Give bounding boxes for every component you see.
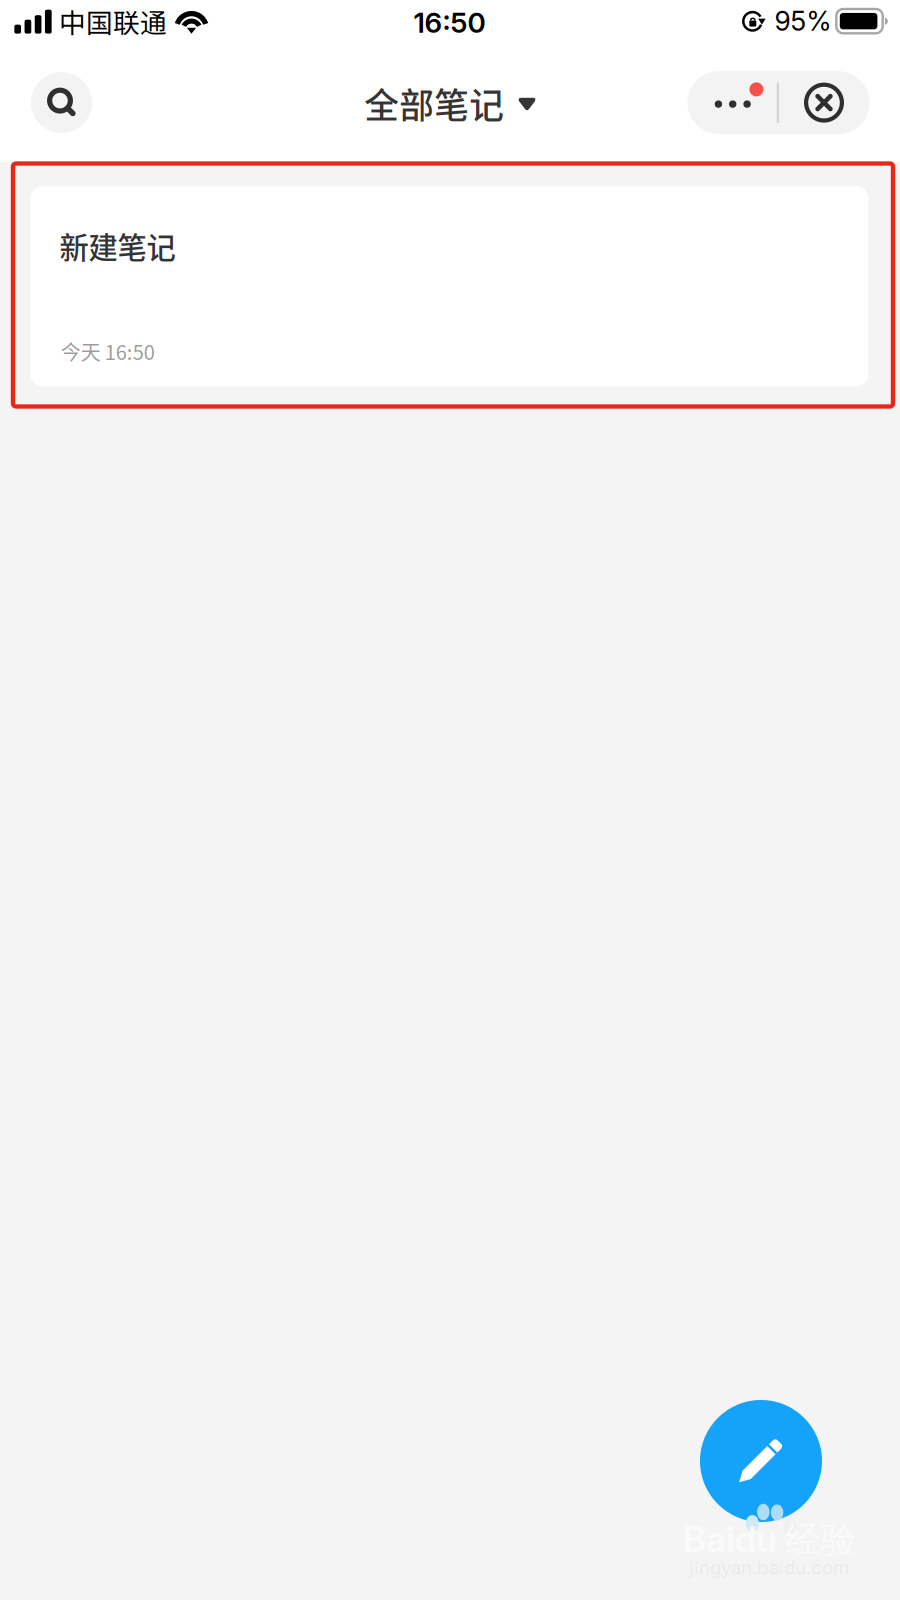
staticText: 新建笔记	[59, 224, 175, 267]
staticText: jingyan.baidu.com	[689, 1556, 849, 1579]
button[interactable]: More options	[688, 71, 777, 134]
staticText: 今天 16:50	[61, 337, 155, 366]
staticText: 中国联通	[59, 2, 167, 40]
button[interactable]: 全部笔记	[348, 68, 552, 139]
button[interactable]: 新建笔记	[30, 186, 868, 386]
button[interactable]: New note	[700, 1400, 822, 1522]
staticText: 16:50	[413, 6, 485, 39]
staticText: 95%	[774, 5, 831, 37]
staticText: 全部笔记	[364, 78, 504, 129]
button[interactable]: Search	[31, 72, 92, 133]
staticText: Baidu 经验	[683, 1517, 857, 1563]
button[interactable]: Close	[779, 71, 869, 134]
